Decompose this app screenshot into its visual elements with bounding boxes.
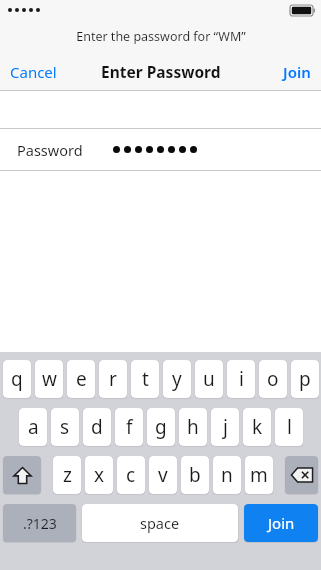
button[interactable]: k: [243, 408, 271, 446]
staticText: o: [267, 366, 279, 392]
staticText: h: [187, 414, 199, 440]
button[interactable]: Join: [273, 53, 321, 90]
button[interactable]: i: [227, 360, 255, 398]
staticText: b: [189, 462, 201, 488]
button[interactable]: f: [115, 408, 143, 446]
button[interactable]: Cancel: [0, 53, 67, 90]
button[interactable]: t: [131, 360, 159, 398]
button[interactable]: l: [275, 408, 303, 446]
button[interactable]: m: [245, 456, 273, 494]
button[interactable]: .?123: [3, 504, 76, 542]
staticText: d: [91, 414, 103, 440]
staticText: y: [172, 366, 182, 392]
staticText: c: [126, 462, 136, 488]
staticText: j: [223, 414, 228, 440]
staticText: u: [203, 366, 215, 392]
button[interactable]: j: [211, 408, 239, 446]
staticText: q: [11, 366, 23, 392]
button[interactable]: b: [181, 456, 209, 494]
staticText: Enter Password: [101, 61, 221, 82]
staticText: .?123: [23, 514, 57, 533]
staticText: k: [252, 414, 263, 440]
staticText: i: [239, 366, 244, 392]
button[interactable]: space: [82, 504, 238, 542]
button[interactable]: x: [85, 456, 113, 494]
staticText: r: [109, 366, 117, 392]
button[interactable]: q: [3, 360, 31, 398]
staticText: v: [158, 462, 168, 488]
staticText: space: [140, 513, 180, 533]
staticText: Cancel: [10, 62, 57, 82]
staticText: p: [299, 366, 311, 392]
button[interactable]: e: [67, 360, 95, 398]
staticText: g: [155, 414, 167, 440]
staticText: n: [221, 462, 233, 488]
button[interactable]: r: [99, 360, 127, 398]
button[interactable]: Backspace: [285, 456, 318, 494]
staticText: w: [42, 366, 57, 392]
button[interactable]: s: [51, 408, 79, 446]
staticText: z: [63, 462, 72, 488]
staticText: Password: [17, 140, 83, 160]
button[interactable]: v: [149, 456, 177, 494]
button[interactable]: u: [195, 360, 223, 398]
staticText: m: [250, 462, 268, 488]
staticText: Join: [283, 62, 311, 82]
staticText: Enter the password for “WM”: [76, 28, 246, 45]
button[interactable]: p: [291, 360, 319, 398]
staticText: s: [60, 414, 70, 440]
button[interactable]: a: [19, 408, 47, 446]
staticText: a: [28, 414, 39, 440]
staticText: l: [287, 414, 292, 440]
button[interactable]: y: [163, 360, 191, 398]
button[interactable]: g: [147, 408, 175, 446]
button[interactable]: h: [179, 408, 207, 446]
button[interactable]: w: [35, 360, 63, 398]
staticText: x: [94, 462, 105, 488]
button[interactable]: n: [213, 456, 241, 494]
button[interactable]: Join: [244, 504, 318, 542]
button[interactable]: z: [53, 456, 81, 494]
staticText: t: [142, 366, 149, 392]
button[interactable]: c: [117, 456, 145, 494]
staticText: e: [76, 366, 87, 392]
button[interactable]: Shift: [3, 456, 41, 494]
button[interactable]: Password: [0, 129, 321, 170]
button[interactable]: d: [83, 408, 111, 446]
button[interactable]: o: [259, 360, 287, 398]
staticText: Join: [268, 513, 295, 533]
staticText: f: [126, 414, 133, 440]
